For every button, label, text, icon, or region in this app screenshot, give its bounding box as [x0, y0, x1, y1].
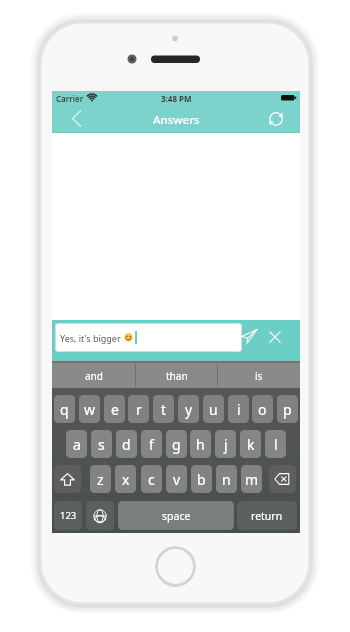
button[interactable]: g: [166, 430, 187, 458]
button[interactable]: b: [191, 465, 212, 493]
button[interactable]: [269, 465, 296, 493]
staticText: q: [60, 400, 69, 419]
staticText: is: [255, 369, 263, 383]
staticText: h: [196, 435, 205, 454]
staticText: and: [85, 369, 103, 383]
staticText: c: [148, 470, 155, 489]
staticText: b: [197, 470, 206, 489]
button[interactable]: [267, 329, 282, 344]
button[interactable]: x: [115, 465, 136, 493]
button[interactable]: e: [104, 395, 125, 423]
button[interactable]: [66, 108, 86, 128]
button[interactable]: y: [178, 395, 199, 423]
button[interactable]: is: [217, 363, 300, 389]
staticText: 123: [60, 509, 77, 522]
button[interactable]: space: [118, 501, 234, 530]
button[interactable]: l: [265, 430, 286, 458]
staticText: a: [73, 435, 81, 454]
staticText: t: [161, 400, 167, 419]
staticText: p: [283, 400, 292, 419]
staticText: space: [162, 509, 191, 523]
button[interactable]: f: [141, 430, 162, 458]
staticText: r: [136, 400, 142, 419]
button[interactable]: m: [241, 465, 262, 493]
button[interactable]: i: [228, 395, 249, 423]
staticText: u: [209, 400, 218, 419]
button[interactable]: and: [52, 363, 135, 389]
button[interactable]: [86, 501, 114, 530]
button[interactable]: c: [141, 465, 162, 493]
button[interactable]: d: [116, 430, 137, 458]
staticText: y: [185, 400, 193, 419]
button[interactable]: h: [190, 430, 211, 458]
button[interactable]: q: [54, 395, 75, 423]
button[interactable]: w: [79, 395, 100, 423]
staticText: Yes, it's bigger: [60, 332, 124, 344]
button[interactable]: v: [166, 465, 187, 493]
staticText: m: [245, 470, 259, 489]
button[interactable]: z: [90, 465, 111, 493]
staticText: g: [172, 435, 181, 454]
staticText: o: [258, 400, 267, 419]
staticText: e: [111, 400, 119, 419]
button[interactable]: Yes, it's bigger: [55, 323, 242, 352]
button[interactable]: [240, 327, 258, 345]
button[interactable]: [266, 109, 285, 128]
button[interactable]: a: [66, 430, 87, 458]
button[interactable]: k: [240, 430, 261, 458]
staticText: f: [149, 435, 154, 454]
staticText: d: [122, 435, 131, 454]
button[interactable]: [54, 465, 81, 493]
staticText: n: [222, 470, 231, 489]
button[interactable]: p: [277, 395, 298, 423]
button[interactable]: j: [215, 430, 236, 458]
button[interactable]: u: [203, 395, 224, 423]
button[interactable]: t: [153, 395, 174, 423]
staticText: w: [84, 400, 96, 419]
button[interactable]: s: [91, 430, 112, 458]
staticText: Carrier: [56, 93, 84, 104]
staticText: z: [97, 470, 104, 489]
staticText: than: [166, 369, 188, 383]
staticText: 3:48 PM: [161, 93, 192, 104]
button[interactable]: 123: [54, 501, 82, 530]
staticText: Answers: [153, 112, 200, 128]
button[interactable]: r: [128, 395, 149, 423]
staticText: i: [237, 400, 241, 419]
staticText: v: [173, 470, 181, 489]
button[interactable]: than: [135, 363, 218, 389]
button[interactable]: [155, 546, 196, 587]
staticText: j: [224, 435, 228, 454]
staticText: l: [274, 435, 278, 454]
staticText: x: [122, 470, 130, 489]
button[interactable]: return: [237, 501, 297, 530]
button[interactable]: o: [252, 395, 273, 423]
staticText: k: [247, 435, 255, 454]
button[interactable]: n: [216, 465, 237, 493]
staticText: s: [98, 435, 105, 454]
staticText: return: [251, 509, 283, 523]
